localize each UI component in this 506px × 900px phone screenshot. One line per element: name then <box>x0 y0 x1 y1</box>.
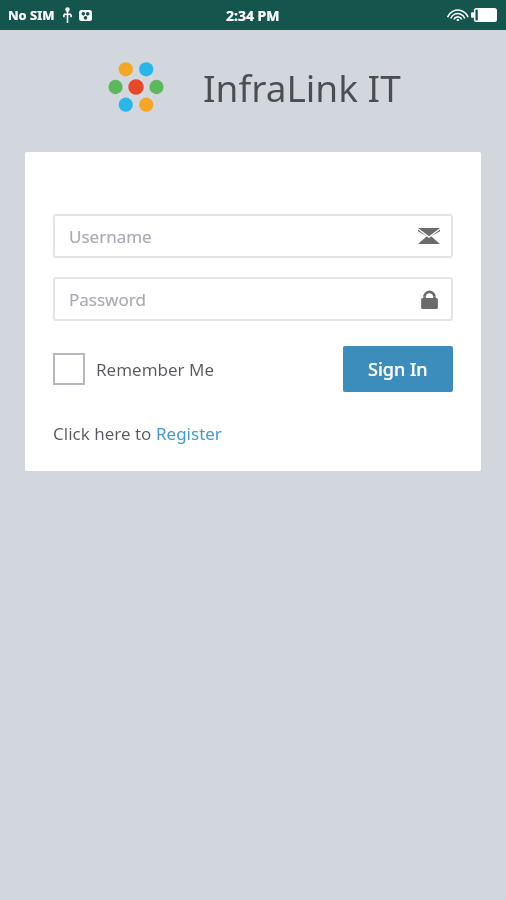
button[interactable]: Remember Me <box>53 353 215 385</box>
staticText: Sign In <box>368 357 428 382</box>
staticText: InfraLink IT <box>203 62 401 112</box>
button[interactable]: Sign In <box>343 346 453 392</box>
staticText: Click here to <box>53 422 156 445</box>
other: Password <box>418 288 440 310</box>
staticText: Register <box>156 422 222 445</box>
button[interactable]: Click here to <box>53 422 222 445</box>
button[interactable]: Password <box>53 277 453 321</box>
staticText: No SIM <box>8 6 55 24</box>
staticText: Password <box>69 288 146 311</box>
staticText: Remember Me <box>96 358 215 381</box>
other: Email <box>418 225 440 247</box>
staticText: 2:34 PM <box>226 6 280 25</box>
staticText: Username <box>69 225 152 248</box>
button[interactable]: Username <box>53 214 453 258</box>
